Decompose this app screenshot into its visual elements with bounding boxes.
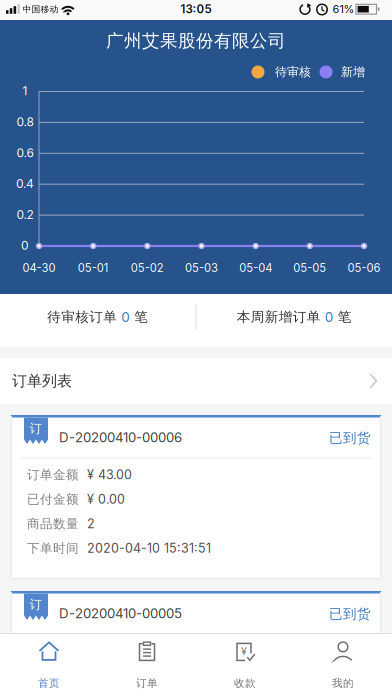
staticText: 我的	[332, 677, 354, 690]
staticText: 0.4	[16, 176, 34, 191]
button[interactable]: 订单列表	[0, 358, 392, 404]
staticText: 05-03	[185, 261, 218, 275]
staticText: 已到货	[329, 605, 371, 622]
staticText: D-20200410-00005	[59, 605, 182, 621]
staticText: 下单时间	[27, 540, 79, 556]
staticText: 0.8	[16, 115, 33, 129]
staticText: 首页	[38, 677, 60, 690]
staticText: 中国移动	[22, 4, 58, 15]
button[interactable]: 订单	[98, 634, 196, 696]
staticText: 笔	[130, 308, 148, 325]
staticText: 61%	[332, 2, 354, 16]
staticText: 待审核订单	[47, 308, 121, 325]
staticText: 新增	[341, 64, 365, 79]
button[interactable]: 已到货	[329, 417, 381, 446]
staticText: 05-02	[131, 261, 164, 275]
button[interactable]: ¥	[196, 634, 294, 696]
staticText: ¥ 43.00	[87, 467, 132, 482]
staticText: ¥	[241, 645, 247, 658]
staticText: 订	[29, 597, 42, 612]
button[interactable]: 订	[11, 415, 381, 579]
staticText: 订单列表	[12, 372, 72, 390]
staticText: ¥ 0.00	[87, 492, 125, 507]
staticText: 0.6	[16, 145, 33, 160]
button[interactable]: 本周新增订单	[196, 294, 392, 347]
staticText: 订单	[136, 677, 158, 690]
staticText: 待审核	[275, 64, 311, 79]
staticText: 05-04	[239, 261, 272, 275]
staticText: 0	[21, 238, 29, 253]
staticText: 广州艾果股份有限公司	[106, 30, 286, 52]
staticText: 0	[121, 309, 130, 325]
button[interactable]: 首页	[0, 634, 98, 696]
staticText: 0	[325, 309, 334, 325]
staticText: 13:05	[180, 2, 211, 16]
staticText: 已付金额	[27, 491, 79, 507]
staticText: 笔	[334, 308, 352, 325]
staticText: 2020-04-10 15:31:51	[87, 541, 211, 556]
staticText: 05-06	[347, 261, 380, 275]
button[interactable]: 订	[11, 591, 381, 633]
staticText: 本周新增订单	[237, 308, 325, 325]
staticText: 05-05	[293, 261, 326, 275]
staticText: 0.2	[16, 207, 33, 222]
button[interactable]: 已到货	[329, 593, 381, 622]
staticText: 05-01	[78, 261, 109, 275]
staticText: 商品数量	[27, 516, 79, 532]
button[interactable]: 我的	[294, 634, 392, 696]
button[interactable]: 待审核订单	[0, 294, 195, 347]
staticText: 已到货	[329, 429, 371, 446]
staticText: 1	[22, 84, 27, 98]
staticText: 订	[29, 421, 42, 436]
staticText: 04-30	[22, 261, 55, 275]
staticText: D-20200410-00006	[59, 429, 182, 445]
staticText: 2	[87, 516, 95, 531]
staticText: 收款	[234, 677, 256, 690]
staticText: 订单金额	[27, 467, 79, 483]
